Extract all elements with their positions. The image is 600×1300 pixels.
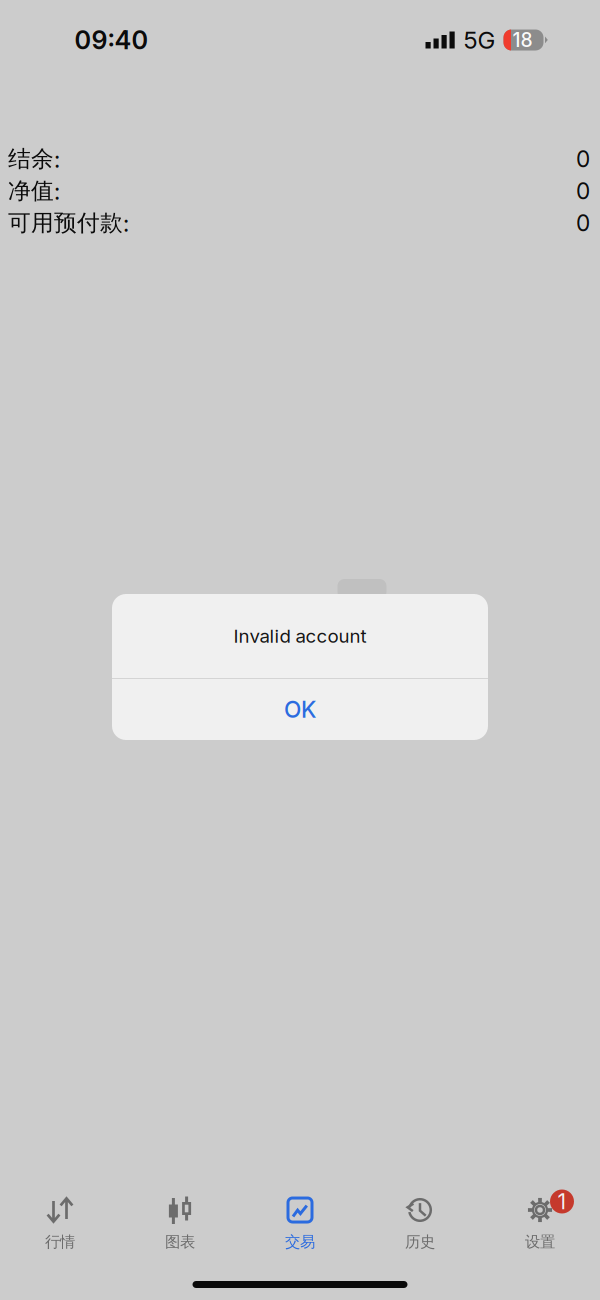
button[interactable]: 行情 [0,1185,120,1250]
staticText: 0 [576,177,590,205]
staticText: 1 [557,1189,566,1214]
staticText: 结余: [8,145,60,173]
staticText: 0 [576,145,590,173]
button[interactable]: 1 [480,1185,600,1250]
staticText: 图表 [165,1232,195,1252]
staticText: 交易 [285,1232,315,1252]
button[interactable]: OK [112,679,488,740]
staticText: 设置 [525,1232,555,1252]
button[interactable]: 图表 [120,1185,240,1250]
staticText: 可用预付款: [8,209,129,237]
staticText: Invalid account [233,625,366,647]
staticText: 5G [463,25,495,54]
button[interactable]: 交易 [240,1185,360,1250]
staticText: 历史 [405,1232,435,1252]
staticText: 行情 [45,1232,75,1252]
button[interactable]: 历史 [360,1185,480,1250]
staticText: 净值: [8,177,60,205]
staticText: OK [284,696,316,723]
staticText: 0 [576,209,590,237]
staticText: 18 [512,28,532,52]
staticText: 09:40 [74,25,148,55]
